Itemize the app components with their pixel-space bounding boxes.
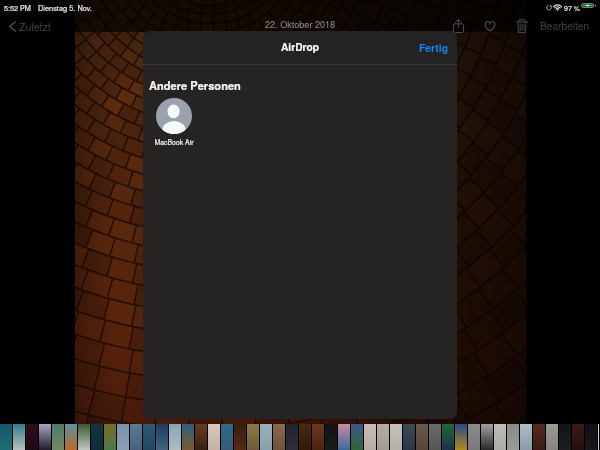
staticText: Dienstag 5. Nov. xyxy=(38,3,92,14)
button[interactable] xyxy=(351,424,364,450)
button[interactable] xyxy=(143,424,156,450)
button[interactable] xyxy=(65,424,78,450)
button[interactable] xyxy=(234,424,247,450)
button[interactable] xyxy=(598,424,600,450)
button[interactable] xyxy=(572,424,585,450)
button[interactable] xyxy=(156,424,169,450)
button[interactable] xyxy=(364,424,377,450)
staticText: Bearbeiten xyxy=(540,18,590,33)
button[interactable] xyxy=(195,424,208,450)
button[interactable]: MacBook Air xyxy=(144,98,204,147)
button[interactable] xyxy=(338,424,351,450)
button[interactable] xyxy=(429,424,442,450)
button[interactable] xyxy=(208,424,221,450)
button[interactable] xyxy=(260,424,273,450)
button[interactable] xyxy=(117,424,130,450)
button[interactable] xyxy=(403,424,416,450)
button[interactable] xyxy=(273,424,286,450)
button[interactable] xyxy=(546,424,559,450)
button[interactable] xyxy=(52,424,65,450)
button[interactable] xyxy=(494,424,507,450)
button[interactable] xyxy=(559,424,572,450)
staticText: 5:52 PM xyxy=(4,3,31,13)
button[interactable] xyxy=(286,424,299,450)
button[interactable] xyxy=(325,424,338,450)
button[interactable] xyxy=(416,424,429,450)
button[interactable] xyxy=(533,424,546,450)
button[interactable] xyxy=(390,424,403,450)
button[interactable] xyxy=(481,424,494,450)
button[interactable] xyxy=(585,424,598,450)
staticText: MacBook Air xyxy=(154,137,194,147)
button[interactable]: Bearbeiten xyxy=(536,17,594,33)
button[interactable] xyxy=(312,424,325,450)
staticText: Zuletzt xyxy=(19,19,51,34)
staticText: 22. Oktober 2018 xyxy=(265,18,336,31)
button[interactable]: Zuletzt xyxy=(9,18,57,34)
button[interactable] xyxy=(26,424,39,450)
button[interactable] xyxy=(455,424,468,450)
button[interactable] xyxy=(0,424,13,450)
button[interactable] xyxy=(299,424,312,450)
button[interactable] xyxy=(169,424,182,450)
staticText: Andere Personen xyxy=(149,78,241,94)
button[interactable]: Fertig xyxy=(409,35,457,60)
button[interactable] xyxy=(507,424,520,450)
staticText: Fertig xyxy=(419,40,449,55)
button[interactable]: Favourite xyxy=(481,18,499,34)
staticText: 97 % xyxy=(564,3,580,13)
button[interactable] xyxy=(130,424,143,450)
button[interactable] xyxy=(78,424,91,450)
button[interactable] xyxy=(104,424,117,450)
button[interactable] xyxy=(442,424,455,450)
button[interactable] xyxy=(13,424,26,450)
staticText: AirDrop xyxy=(281,40,319,55)
button[interactable] xyxy=(247,424,260,450)
button[interactable] xyxy=(39,424,52,450)
button[interactable] xyxy=(468,424,481,450)
button[interactable] xyxy=(221,424,234,450)
button[interactable]: Delete xyxy=(513,18,531,34)
button[interactable] xyxy=(377,424,390,450)
button[interactable] xyxy=(520,424,533,450)
button[interactable]: Share xyxy=(449,18,467,34)
button[interactable] xyxy=(182,424,195,450)
button[interactable] xyxy=(91,424,104,450)
